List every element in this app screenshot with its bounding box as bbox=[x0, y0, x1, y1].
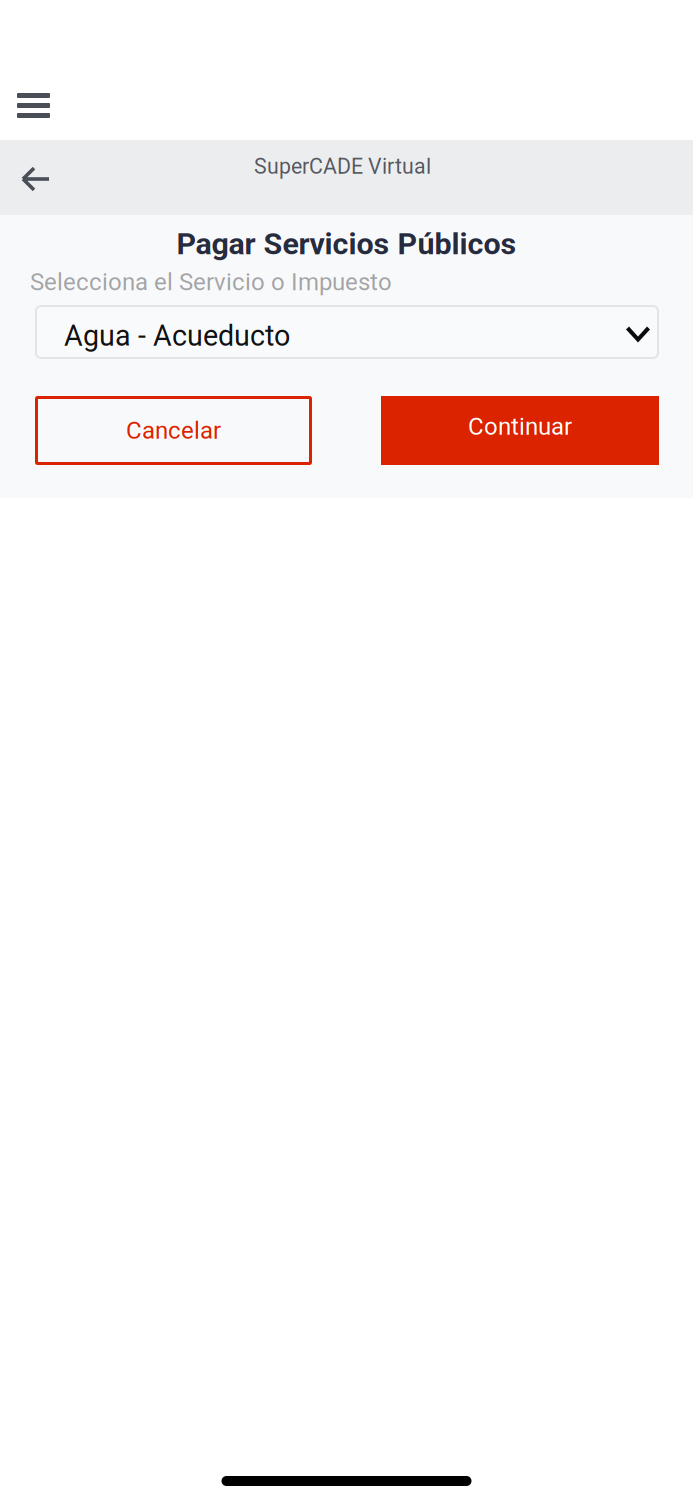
button[interactable]: Agua - Acueducto bbox=[35, 305, 659, 359]
button[interactable]: Menu bbox=[0, 77, 70, 140]
staticText: Selecciona el Servicio o Impuesto bbox=[30, 268, 392, 296]
staticText: Pagar Servicios Públicos bbox=[176, 226, 516, 262]
button[interactable]: Back bbox=[0, 155, 70, 204]
button[interactable]: Continuar bbox=[381, 396, 659, 465]
button[interactable]: Cancelar bbox=[35, 396, 312, 465]
staticText: Agua - Acueducto bbox=[64, 319, 290, 353]
staticText: SuperCADE Virtual bbox=[254, 154, 431, 179]
staticText: Cancelar bbox=[126, 416, 221, 444]
staticText: Continuar bbox=[468, 412, 572, 440]
